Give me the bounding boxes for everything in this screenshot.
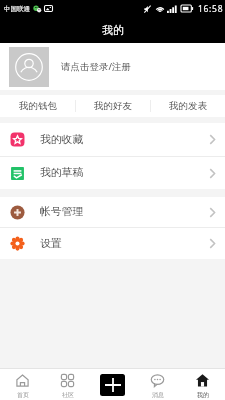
staticText: 16:58 (198, 3, 224, 15)
staticText: 我的发表 (169, 100, 207, 112)
button[interactable]: 我的钱包 (0, 95, 75, 117)
button[interactable]: 首页 (0, 369, 45, 400)
staticText: 社区 (62, 391, 74, 399)
staticText: 设置 (40, 237, 62, 251)
button[interactable]: 我的好友 (76, 95, 150, 117)
staticText: 我的 (197, 391, 209, 399)
staticText: 我的 (102, 23, 124, 37)
button[interactable]: 我的发表 (151, 95, 225, 117)
button[interactable]: Create new post (90, 369, 135, 400)
button[interactable]: 我的草稿 (0, 157, 225, 189)
staticText: 我的草稿 (40, 166, 84, 180)
staticText: 我的收藏 (40, 133, 84, 147)
button[interactable]: 帐号管理 (0, 197, 225, 227)
staticText: 帐号管理 (40, 205, 84, 219)
staticText: 我的好友 (94, 100, 132, 112)
staticText: 首页 (17, 391, 29, 399)
button[interactable]: 请点击登录/注册 (0, 43, 225, 90)
staticText: 请点击登录/注册 (61, 60, 132, 73)
button[interactable]: 我的收藏 (0, 123, 225, 156)
button[interactable]: 我的 (180, 369, 225, 400)
button[interactable]: 消息 (135, 369, 180, 400)
staticText: 中国联通 (4, 5, 30, 13)
button[interactable]: 社区 (45, 369, 90, 400)
button[interactable]: 设置 (0, 228, 225, 259)
staticText: 我的钱包 (19, 100, 57, 112)
staticText: 消息 (152, 391, 164, 399)
